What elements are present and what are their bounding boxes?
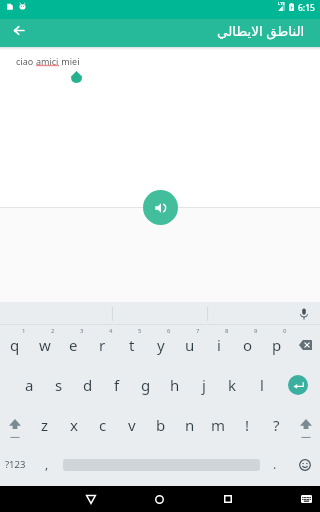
button[interactable]: l [247, 365, 276, 405]
staticText: amici [36, 55, 59, 67]
staticText: e [69, 335, 78, 355]
button[interactable]: a [15, 365, 44, 405]
button[interactable]: m [204, 405, 233, 445]
button[interactable]: 7 [175, 325, 204, 365]
staticText: v [128, 415, 136, 435]
button[interactable]: Back [68, 492, 114, 506]
staticText: 7 [196, 327, 200, 335]
button[interactable]: ! [233, 405, 262, 445]
button[interactable]: s [44, 365, 73, 405]
staticText: ?123 [5, 458, 26, 471]
staticText: ? [273, 415, 280, 435]
staticText: 0 [283, 327, 287, 335]
staticText: 6:15 [298, 2, 315, 14]
staticText: 4 [109, 327, 113, 335]
staticText: r [99, 335, 106, 355]
staticText: 1 [22, 327, 26, 335]
staticText: m [211, 415, 226, 435]
button[interactable]: Voice input [294, 304, 314, 324]
button[interactable]: n [175, 405, 204, 445]
staticText: t [129, 335, 135, 355]
button[interactable]: Backspace [291, 325, 320, 365]
button[interactable]: 6 [146, 325, 175, 365]
staticText: h [170, 375, 180, 395]
button[interactable]: v [117, 405, 146, 445]
staticText: ciao [16, 55, 36, 67]
button[interactable]: g [131, 365, 160, 405]
button[interactable]: ? [262, 405, 291, 445]
staticText: n [185, 415, 195, 435]
button[interactable]: x [59, 405, 88, 445]
staticText: ! [245, 415, 250, 435]
staticText: s [55, 375, 63, 395]
button[interactable]: 3 [59, 325, 88, 365]
staticText: 6 [167, 327, 171, 335]
button[interactable]: Emoji [290, 445, 320, 486]
staticText: 8 [225, 327, 229, 335]
button[interactable]: Speak [143, 190, 178, 225]
staticText: p [272, 335, 282, 355]
staticText: 9 [254, 327, 258, 335]
button[interactable]: j [189, 365, 218, 405]
button[interactable]: , [31, 445, 63, 486]
button[interactable]: . [260, 445, 290, 486]
staticText: q [10, 335, 20, 355]
button[interactable]: Switch keyboard [294, 492, 318, 506]
staticText: LTE [278, 1, 285, 6]
staticText: . [273, 456, 277, 472]
staticText: , [45, 456, 49, 472]
button[interactable]: z [30, 405, 59, 445]
button[interactable]: h [160, 365, 189, 405]
staticText: z [41, 415, 49, 435]
button[interactable]: 2 [30, 325, 59, 365]
staticText: k [228, 375, 237, 395]
button[interactable]: 4 [88, 325, 117, 365]
staticText: i [217, 335, 221, 355]
staticText: b [156, 415, 166, 435]
button[interactable]: Shift [291, 405, 320, 445]
staticText: x [70, 415, 78, 435]
staticText: f [114, 375, 120, 395]
staticText: l [260, 375, 264, 395]
staticText: 3 [80, 327, 84, 335]
button[interactable]: Recents [205, 492, 251, 506]
staticText: d [83, 375, 93, 395]
button[interactable]: Space [63, 445, 260, 486]
button[interactable]: 9 [233, 325, 262, 365]
staticText: miei [59, 55, 80, 67]
button[interactable]: Back [5, 19, 33, 47]
button[interactable]: b [146, 405, 175, 445]
staticText: j [202, 375, 206, 395]
button[interactable]: Shift [0, 405, 30, 445]
button[interactable]: k [218, 365, 247, 405]
staticText: w [39, 335, 51, 355]
staticText: g [141, 375, 151, 395]
staticText: 5 [138, 327, 142, 335]
button[interactable]: 1 [0, 325, 30, 365]
button[interactable]: Enter [276, 365, 320, 405]
button[interactable]: d [73, 365, 102, 405]
staticText: o [243, 335, 253, 355]
staticText: الناطق الايطالي [217, 22, 305, 40]
staticText: a [25, 375, 34, 395]
staticText: u [185, 335, 195, 355]
staticText: 2 [51, 327, 55, 335]
button[interactable]: 8 [204, 325, 233, 365]
staticText: y [157, 335, 165, 355]
button[interactable]: 5 [117, 325, 146, 365]
button[interactable]: c [88, 405, 117, 445]
button[interactable]: ?123 [0, 445, 31, 486]
button[interactable]: f [102, 365, 131, 405]
staticText: c [99, 415, 107, 435]
button[interactable]: Home [136, 492, 182, 506]
button[interactable]: 0 [262, 325, 291, 365]
